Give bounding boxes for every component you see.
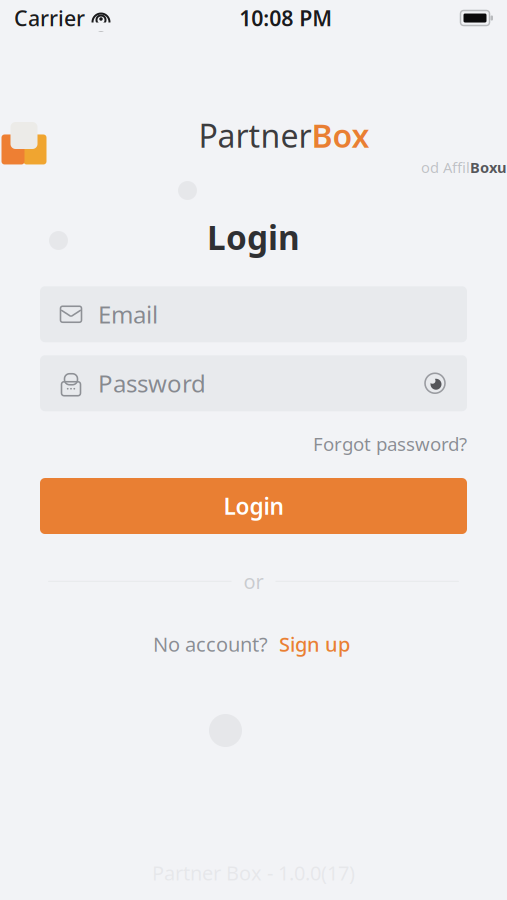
staticText: Box	[311, 114, 369, 156]
staticText: Forgot password?	[313, 431, 467, 456]
button[interactable]: Sign up	[275, 628, 354, 660]
staticText: Password	[98, 367, 206, 399]
staticText: od Affil	[421, 157, 470, 177]
button[interactable]: Forgot password?	[313, 427, 467, 460]
staticText: Email	[98, 298, 158, 330]
staticText: Carrier	[14, 4, 85, 32]
staticText: Sign up	[279, 631, 350, 657]
staticText: or	[243, 568, 263, 595]
button[interactable]: Show password	[423, 371, 447, 395]
staticText: Login	[223, 491, 283, 521]
staticText: Boxu	[470, 157, 507, 177]
staticText: 10:08 PM	[239, 4, 332, 32]
staticText: Partner Box - 1.0.0(17)	[152, 859, 355, 886]
button[interactable]: Login	[40, 478, 467, 534]
staticText: Login	[207, 215, 300, 259]
staticText: Partner	[198, 114, 311, 156]
button[interactable]: Email	[40, 286, 467, 342]
staticText: No account?	[153, 631, 268, 657]
